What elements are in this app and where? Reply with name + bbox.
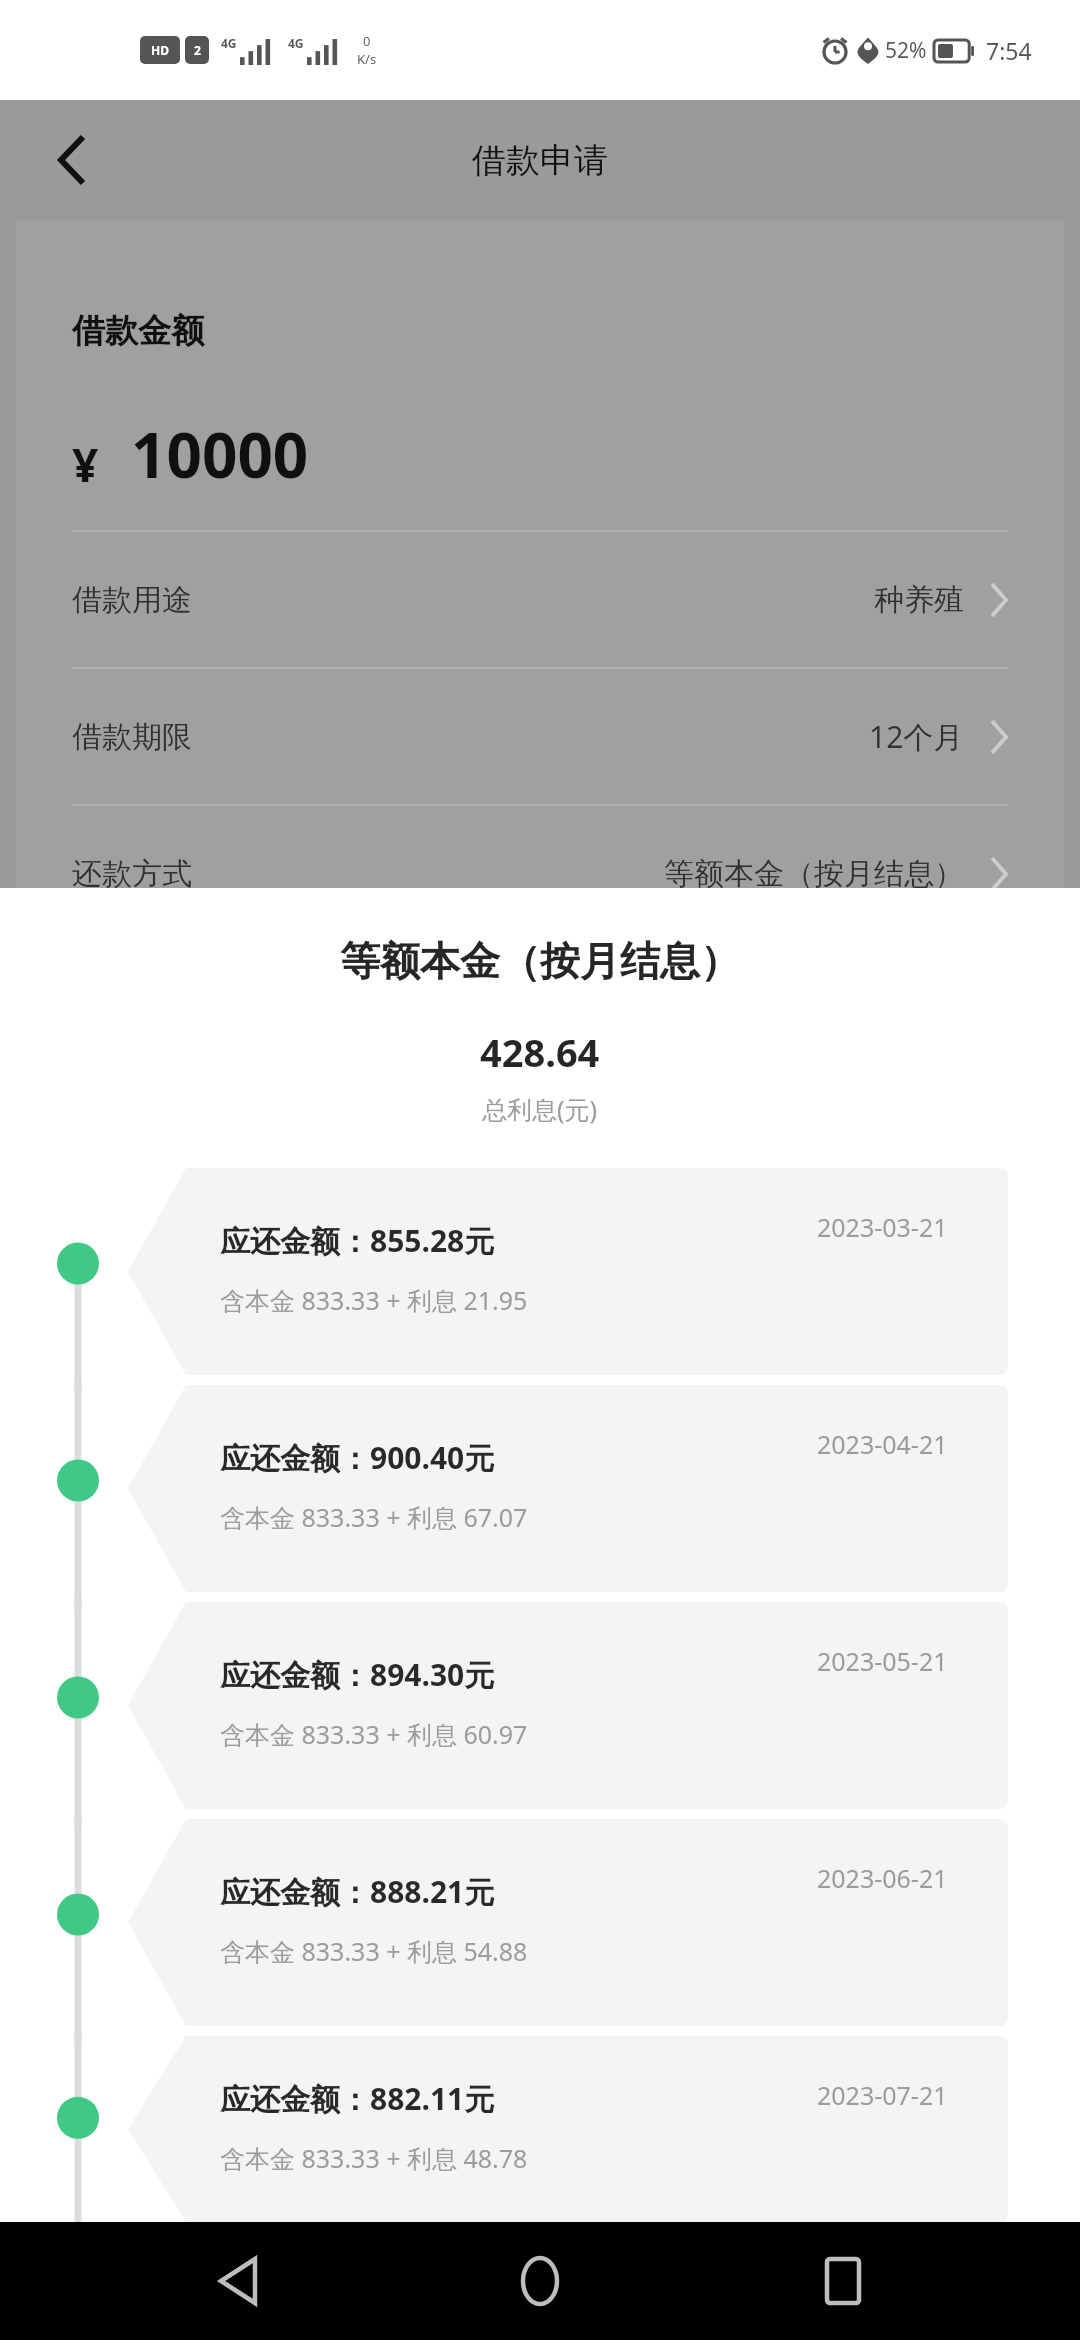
staticText: 2 (194, 42, 201, 58)
button[interactable]: Home (475, 2222, 605, 2340)
staticText: 种养殖 (874, 581, 964, 619)
staticText: 2023-06-21 (817, 1861, 948, 1895)
staticText: 借款用途 (72, 581, 192, 619)
staticText: 应还金额：900.40元 (220, 1437, 495, 1478)
staticText: 含本金 833.33 + 利息 21.95 (220, 1283, 528, 1317)
staticText: 12个月 (869, 716, 964, 757)
staticText: 含本金 833.33 + 利息 60.97 (220, 1717, 528, 1751)
button[interactable]: 还款方式 (72, 806, 1008, 941)
staticText: 2023-04-21 (817, 1427, 948, 1461)
button[interactable]: 借款用途 (72, 532, 1008, 667)
staticText: 0 (363, 32, 371, 50)
staticText: 7:54 (986, 35, 1032, 66)
staticText: ¥ (72, 433, 99, 496)
button[interactable]: Back (26, 114, 118, 206)
button[interactable]: 借款期限 (72, 669, 1008, 804)
staticText: 2023-07-21 (817, 2078, 948, 2112)
staticText: 应还金额：894.30元 (220, 1654, 495, 1695)
staticText: 等额本金（按月结息） (340, 936, 740, 986)
staticText: 应还金额：855.28元 (220, 1220, 495, 1261)
button[interactable]: 应还金额：888.21元 (128, 1819, 1008, 2026)
button[interactable]: 应还金额：855.28元 (128, 1168, 1008, 1375)
button[interactable]: 应还金额：900.40元 (128, 1385, 1008, 1592)
staticText: 含本金 833.33 + 利息 67.07 (220, 1500, 528, 1534)
staticText: 应还金额：882.11元 (220, 2078, 495, 2119)
staticText: 4G (288, 35, 304, 51)
staticText: 借款期限 (72, 718, 192, 756)
staticText: 借款金额 (72, 310, 204, 352)
button[interactable]: Recent apps (778, 2222, 908, 2340)
staticText: 含本金 833.33 + 利息 54.88 (220, 1934, 528, 1968)
staticText: 应还金额：888.21元 (220, 1871, 495, 1912)
button[interactable]: Back (173, 2222, 303, 2340)
staticText: 10000 (131, 412, 309, 496)
staticText: 2023-05-21 (817, 1644, 948, 1678)
staticText: 52% (885, 36, 927, 65)
staticText: 含本金 833.33 + 利息 48.78 (220, 2141, 528, 2175)
button[interactable]: 应还金额：894.30元 (128, 1602, 1008, 1809)
staticText: 4G (221, 35, 237, 51)
staticText: 借款申请 (472, 139, 608, 182)
staticText: 还款方式 (72, 855, 192, 893)
staticText: 等额本金（按月结息） (664, 855, 964, 893)
staticText: K/s (357, 50, 377, 68)
button[interactable]: 应还金额：882.11元 (128, 2036, 1008, 2222)
staticText: 2023-03-21 (817, 1210, 948, 1244)
staticText: HD (151, 42, 169, 58)
staticText: 428.64 (480, 1026, 600, 1078)
staticText: 总利息(元) (482, 1092, 598, 1126)
